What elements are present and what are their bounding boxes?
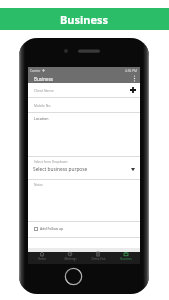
button[interactable]: Home — [64, 267, 83, 286]
staticText: Select from Dropdown — [34, 160, 68, 164]
staticText: Notes — [34, 183, 43, 187]
button[interactable]: Demo Visit — [84, 252, 112, 261]
staticText: Mobile No. — [34, 103, 52, 108]
staticText: Add Follow up — [40, 226, 64, 231]
button[interactable]: Add Follow up — [28, 222, 140, 237]
staticText: Business — [34, 76, 54, 82]
staticText: 4:56 PM — [125, 69, 137, 73]
button[interactable]: Meetings — [56, 252, 84, 261]
staticText: Demo Visit — [91, 257, 106, 261]
button[interactable]: Mobile No. — [28, 98, 140, 112]
staticText: Business — [120, 257, 132, 261]
button[interactable]: More options — [129, 74, 140, 83]
staticText: Client Name — [34, 88, 54, 93]
button[interactable]: Business — [112, 252, 140, 261]
staticText: Carrier — [30, 69, 41, 73]
button[interactable]: Home — [28, 252, 56, 261]
button[interactable]: Select from Dropdown — [28, 157, 140, 179]
staticText: Home — [38, 257, 46, 261]
staticText: Business — [60, 12, 109, 27]
staticText: Select business purpose — [33, 166, 88, 173]
staticText: Location — [34, 116, 49, 121]
staticText: Meetings — [64, 257, 77, 261]
button[interactable]: Add client — [126, 83, 140, 97]
button[interactable]: Location — [28, 113, 140, 156]
